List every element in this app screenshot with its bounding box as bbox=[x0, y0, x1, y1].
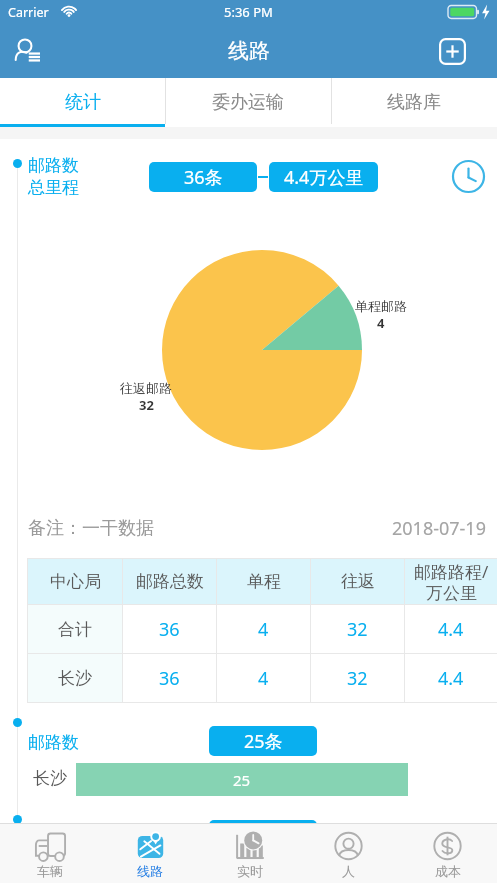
button[interactable]: 实时 bbox=[200, 824, 299, 883]
staticText: 线路库 bbox=[387, 91, 441, 114]
staticText: 车辆 bbox=[37, 863, 63, 879]
staticText: 4 bbox=[258, 666, 269, 691]
staticText: 4.4 bbox=[438, 617, 464, 642]
staticText: 单程 bbox=[247, 571, 281, 592]
button[interactable]: History bbox=[448, 156, 488, 196]
button[interactable]: 4.4万公里 bbox=[269, 162, 378, 192]
staticText: 委办运输 bbox=[212, 91, 284, 114]
staticText: 2018-07-19 bbox=[392, 516, 486, 540]
button[interactable]: 线路 bbox=[100, 824, 200, 883]
button[interactable]: 36条 bbox=[149, 162, 257, 192]
staticText: 32 bbox=[347, 666, 368, 691]
staticText: 长沙 bbox=[58, 668, 92, 689]
button[interactable]: 统计 bbox=[0, 78, 165, 127]
staticText: 线路 bbox=[228, 38, 270, 64]
staticText: 4.4万公里 bbox=[284, 165, 364, 190]
button[interactable]: 12条 bbox=[209, 820, 317, 850]
button[interactable]: 成本 bbox=[398, 824, 497, 883]
staticText: 邮路路程/ bbox=[414, 560, 489, 583]
staticText: 线路 bbox=[137, 863, 163, 879]
staticText: 长沙 bbox=[33, 768, 67, 789]
staticText: 单程邮路 bbox=[355, 298, 407, 314]
staticText: 合计 bbox=[58, 619, 92, 640]
staticText: 统计 bbox=[65, 91, 101, 114]
staticText: 邮路数 bbox=[28, 732, 79, 753]
staticText: 25 bbox=[233, 770, 251, 790]
staticText: 32 bbox=[347, 617, 368, 642]
staticText: 万公里 bbox=[426, 583, 477, 604]
staticText: 4.4 bbox=[438, 666, 464, 691]
button[interactable]: 25条 bbox=[209, 726, 317, 756]
staticText: Carrier bbox=[8, 4, 49, 21]
staticText: 成本 bbox=[435, 863, 461, 879]
button[interactable]: Contacts bbox=[4, 27, 52, 75]
staticText: 36 bbox=[159, 666, 180, 691]
staticText: 36条 bbox=[184, 165, 223, 190]
staticText: 5:36 PM bbox=[224, 3, 273, 21]
staticText: 4 bbox=[258, 617, 269, 642]
staticText: 总里程 bbox=[28, 177, 79, 198]
staticText: 实时 bbox=[237, 863, 263, 879]
staticText: 4 bbox=[377, 314, 385, 332]
staticText: 备注：一干数据 bbox=[28, 517, 154, 540]
staticText: 邮路总数 bbox=[136, 571, 204, 592]
staticText: 12条 bbox=[244, 823, 283, 848]
button[interactable]: 车辆 bbox=[0, 824, 100, 883]
button[interactable]: 人 bbox=[299, 824, 398, 883]
button[interactable]: 线路库 bbox=[331, 78, 497, 127]
staticText: 往返邮路 bbox=[120, 380, 172, 396]
staticText: 往返 bbox=[341, 571, 375, 592]
staticText: 中心局 bbox=[50, 571, 101, 592]
staticText: 人 bbox=[342, 863, 355, 879]
button[interactable]: 委办运输 bbox=[165, 78, 331, 127]
staticText: 32 bbox=[139, 396, 154, 414]
staticText: 邮路数 bbox=[28, 155, 79, 176]
button[interactable]: Add bbox=[428, 27, 476, 75]
staticText: 36 bbox=[159, 617, 180, 642]
staticText: 25条 bbox=[244, 729, 283, 754]
